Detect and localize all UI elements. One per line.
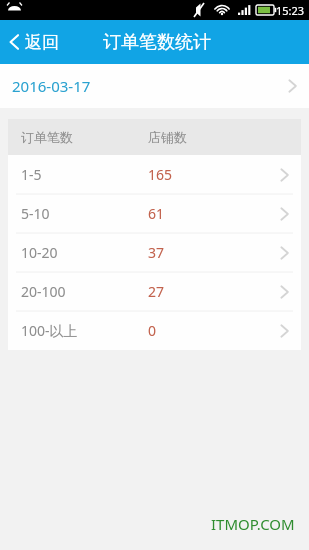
button[interactable]: 100-以上 [8,311,301,350]
staticText: 165 [148,165,173,184]
staticText: 店铺数 [148,129,187,145]
staticText: 1-5 [21,165,42,184]
button[interactable]: 5-10 [8,194,301,233]
staticText: ITMOP.COM [211,514,295,534]
staticText: 15:23 [276,3,305,18]
staticText: 100-以上 [21,321,78,340]
staticText: 订单笔数 [21,129,73,145]
button[interactable]: 20-100 [8,272,301,311]
staticText: 2016-03-17 [12,76,91,96]
staticText: 20-100 [21,282,66,301]
staticText: 0 [148,321,157,340]
staticText: 61 [148,204,165,223]
button[interactable]: 2016-03-17 [0,64,309,108]
staticText: 27 [148,282,165,301]
staticText: 5-10 [21,204,50,223]
staticText: 37 [148,243,165,262]
button[interactable]: 1-5 [8,155,301,194]
staticText: 订单笔数统计 [103,31,211,54]
staticText: 返回 [25,32,59,53]
button[interactable]: 返回 [0,20,71,64]
staticText: 10-20 [21,243,58,262]
button[interactable]: 10-20 [8,233,301,272]
